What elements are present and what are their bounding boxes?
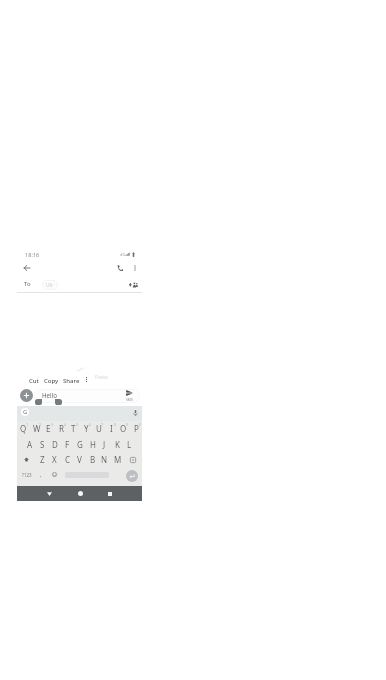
staticText: X (52, 454, 57, 465)
button[interactable]: A (23, 437, 36, 452)
button[interactable]: Enter (126, 470, 138, 482)
button[interactable]: S (36, 437, 49, 452)
staticText: ?123 (22, 472, 32, 478)
button[interactable]: M (111, 452, 124, 467)
staticText: D (52, 439, 58, 450)
button[interactable]: C (61, 452, 74, 467)
staticText: 5 (76, 422, 79, 427)
staticText: Paste (95, 374, 108, 381)
staticText: 1 (26, 422, 29, 427)
staticText: J (103, 439, 106, 450)
staticText: 8 (114, 422, 117, 427)
staticText: SMS (126, 397, 133, 402)
button[interactable]: Ulr (42, 280, 58, 290)
staticText: 6 (89, 422, 92, 427)
button[interactable]: Home (71, 486, 89, 501)
staticText: I (110, 423, 113, 434)
staticText: V (77, 454, 82, 465)
staticText: Z (40, 454, 45, 465)
staticText: C (65, 454, 71, 465)
staticText: 18:16 (25, 251, 40, 259)
button[interactable]: Emoji (49, 467, 60, 482)
button[interactable]: Selection start handle (35, 399, 42, 405)
staticText: M (114, 454, 122, 465)
staticText: O (120, 423, 127, 434)
button[interactable]: Send SMS (123, 388, 135, 402)
staticText: Ulr (46, 282, 54, 289)
staticText: A (27, 439, 33, 450)
staticText: Copy (44, 377, 59, 385)
button[interactable]: Recent apps (101, 486, 119, 501)
button[interactable]: R (55, 421, 68, 436)
button[interactable]: N (98, 452, 111, 467)
button[interactable]: H (86, 437, 99, 452)
staticText: L (127, 439, 132, 450)
staticText: N (101, 454, 108, 465)
button[interactable]: I (105, 421, 118, 436)
staticText: G (77, 439, 83, 450)
staticText: 4G (120, 252, 126, 258)
staticText: G (23, 408, 28, 416)
staticText: T (71, 423, 76, 434)
button[interactable] (34, 389, 140, 403)
button[interactable]: F (61, 437, 74, 452)
button[interactable]: Paste (95, 374, 108, 381)
button[interactable]: Add attachment (20, 389, 33, 402)
staticText: Cut (29, 377, 39, 385)
button[interactable]: D (48, 437, 61, 452)
staticText: , (40, 471, 42, 478)
button[interactable]: U (92, 421, 105, 436)
staticText: W (33, 423, 41, 434)
staticText: Hello (42, 391, 58, 399)
button[interactable]: More options (129, 262, 141, 274)
button[interactable]: Backspace (123, 452, 142, 467)
staticText: U (96, 423, 102, 434)
button[interactable]: Selection end handle (55, 399, 62, 405)
button[interactable]: Y (80, 421, 93, 436)
button[interactable]: Cut (27, 375, 41, 386)
button[interactable]: Call (114, 262, 126, 274)
staticText: 0 (139, 422, 142, 427)
button[interactable]: V (73, 452, 86, 467)
button[interactable]: Google search (21, 408, 29, 416)
button[interactable]: L (123, 437, 136, 452)
staticText: H (90, 439, 96, 450)
button[interactable]: Share (61, 375, 82, 386)
button[interactable]: K (111, 437, 124, 452)
staticText: Y (84, 423, 89, 434)
button[interactable]: More options (82, 375, 90, 383)
button[interactable]: Voice input (131, 408, 140, 417)
staticText: P (134, 423, 139, 434)
staticText: E (46, 423, 51, 434)
staticText: F (65, 439, 70, 450)
button[interactable]: Copy (42, 375, 61, 386)
button[interactable]: P (130, 421, 143, 436)
button[interactable]: Back (21, 262, 33, 274)
button[interactable]: , (36, 467, 46, 482)
button[interactable]: O (117, 421, 130, 436)
button[interactable]: Shift (17, 452, 36, 467)
button[interactable]: T (67, 421, 80, 436)
staticText: R (59, 423, 64, 434)
staticText: 7 (101, 422, 104, 427)
button[interactable]: E (42, 421, 55, 436)
button[interactable]: Back (40, 486, 58, 501)
staticText: Q (20, 423, 27, 434)
staticText: Share (63, 377, 80, 385)
button[interactable]: G (73, 437, 86, 452)
staticText: B (90, 454, 96, 465)
button[interactable]: J (98, 437, 111, 452)
button[interactable]: B (86, 452, 99, 467)
staticText: 9 (126, 422, 129, 427)
staticText: K (115, 439, 120, 450)
button[interactable]: W (30, 421, 43, 436)
staticText: 2 (39, 422, 42, 427)
staticText: 4 (64, 422, 67, 427)
button[interactable]: ?123 (21, 467, 33, 482)
button[interactable]: Z (36, 452, 49, 467)
staticText: 3 (51, 422, 54, 427)
button[interactable]: Add contact (128, 280, 138, 290)
button[interactable]: X (48, 452, 61, 467)
button[interactable]: Q (17, 421, 30, 436)
